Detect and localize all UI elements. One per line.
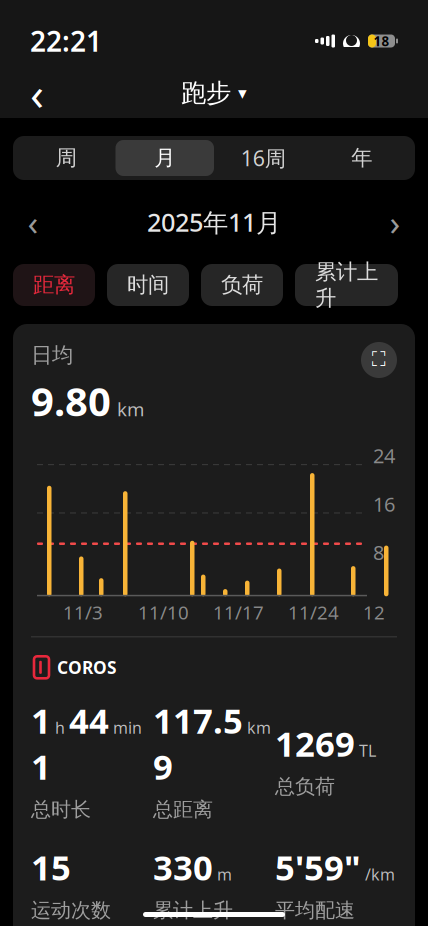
staticText: 跑步 — [181, 77, 231, 108]
staticText: 负荷 — [221, 272, 263, 298]
button[interactable]: Previous month — [11, 200, 55, 244]
button[interactable]: 负荷 — [201, 264, 283, 306]
staticText: 累计上升 — [315, 259, 378, 311]
button[interactable]: Next month — [373, 200, 417, 244]
staticText: 距离 — [33, 272, 75, 298]
staticText: 日均 — [31, 342, 73, 368]
staticText: COROS — [57, 656, 117, 679]
staticText: 16周 — [241, 144, 286, 172]
staticText: 24 — [373, 442, 395, 469]
staticText: m — [217, 864, 232, 885]
staticText: 总距离 — [153, 797, 213, 822]
staticText: 11/10 — [138, 600, 189, 625]
staticText: 11/24 — [288, 600, 339, 625]
staticText: 117.59 — [153, 697, 243, 789]
staticText: 年 — [351, 145, 372, 171]
button[interactable]: Expand chart — [361, 342, 397, 378]
staticText: 1269 — [275, 720, 355, 766]
staticText: 11/3 — [63, 600, 103, 625]
staticText: 9.80 — [31, 374, 111, 427]
staticText: 月 — [154, 145, 175, 171]
staticText: 18 — [373, 32, 389, 50]
button[interactable]: 周 — [17, 140, 115, 176]
staticText: 8 — [373, 539, 384, 566]
staticText: ‹ — [27, 199, 38, 245]
staticText: 平均配速 — [275, 898, 355, 923]
staticText: 累计上升 — [153, 898, 233, 923]
staticText: km — [117, 397, 144, 421]
staticText: 330 — [153, 844, 213, 890]
button[interactable]: 年 — [312, 140, 411, 176]
staticText: h — [55, 717, 65, 738]
staticText: 44 — [69, 697, 109, 743]
staticText: 2025年11月 — [147, 205, 281, 239]
button[interactable]: 累计上升 — [295, 264, 398, 306]
staticText: 22:21 — [30, 22, 102, 60]
staticText: › — [389, 199, 400, 245]
staticText: 5'59" — [275, 844, 361, 890]
staticText: 11 — [31, 697, 51, 789]
button[interactable]: 跑步 — [173, 71, 255, 114]
staticText: 总负荷 — [275, 774, 335, 799]
staticText: ⛶ — [372, 350, 386, 370]
staticText: 总时长 — [31, 797, 91, 822]
staticText: 周 — [56, 145, 77, 171]
button[interactable]: Back — [14, 70, 60, 116]
button[interactable]: 时间 — [107, 264, 189, 306]
staticText: 11/17 — [213, 600, 264, 625]
staticText: /km — [365, 864, 395, 885]
staticText: 12 — [363, 600, 385, 625]
staticText: 运动次数 — [31, 898, 111, 923]
staticText: 16 — [373, 491, 395, 517]
staticText: min — [113, 717, 142, 738]
staticText: km — [247, 717, 271, 738]
staticText: TL — [359, 740, 376, 761]
staticText: 15 — [31, 844, 71, 890]
button[interactable]: 月 — [115, 140, 214, 176]
staticText: ▾ — [238, 83, 247, 103]
button[interactable]: 距离 — [13, 264, 95, 306]
staticText: 时间 — [127, 272, 169, 298]
button[interactable]: 16周 — [214, 140, 312, 176]
staticText: ‹ — [30, 63, 44, 123]
